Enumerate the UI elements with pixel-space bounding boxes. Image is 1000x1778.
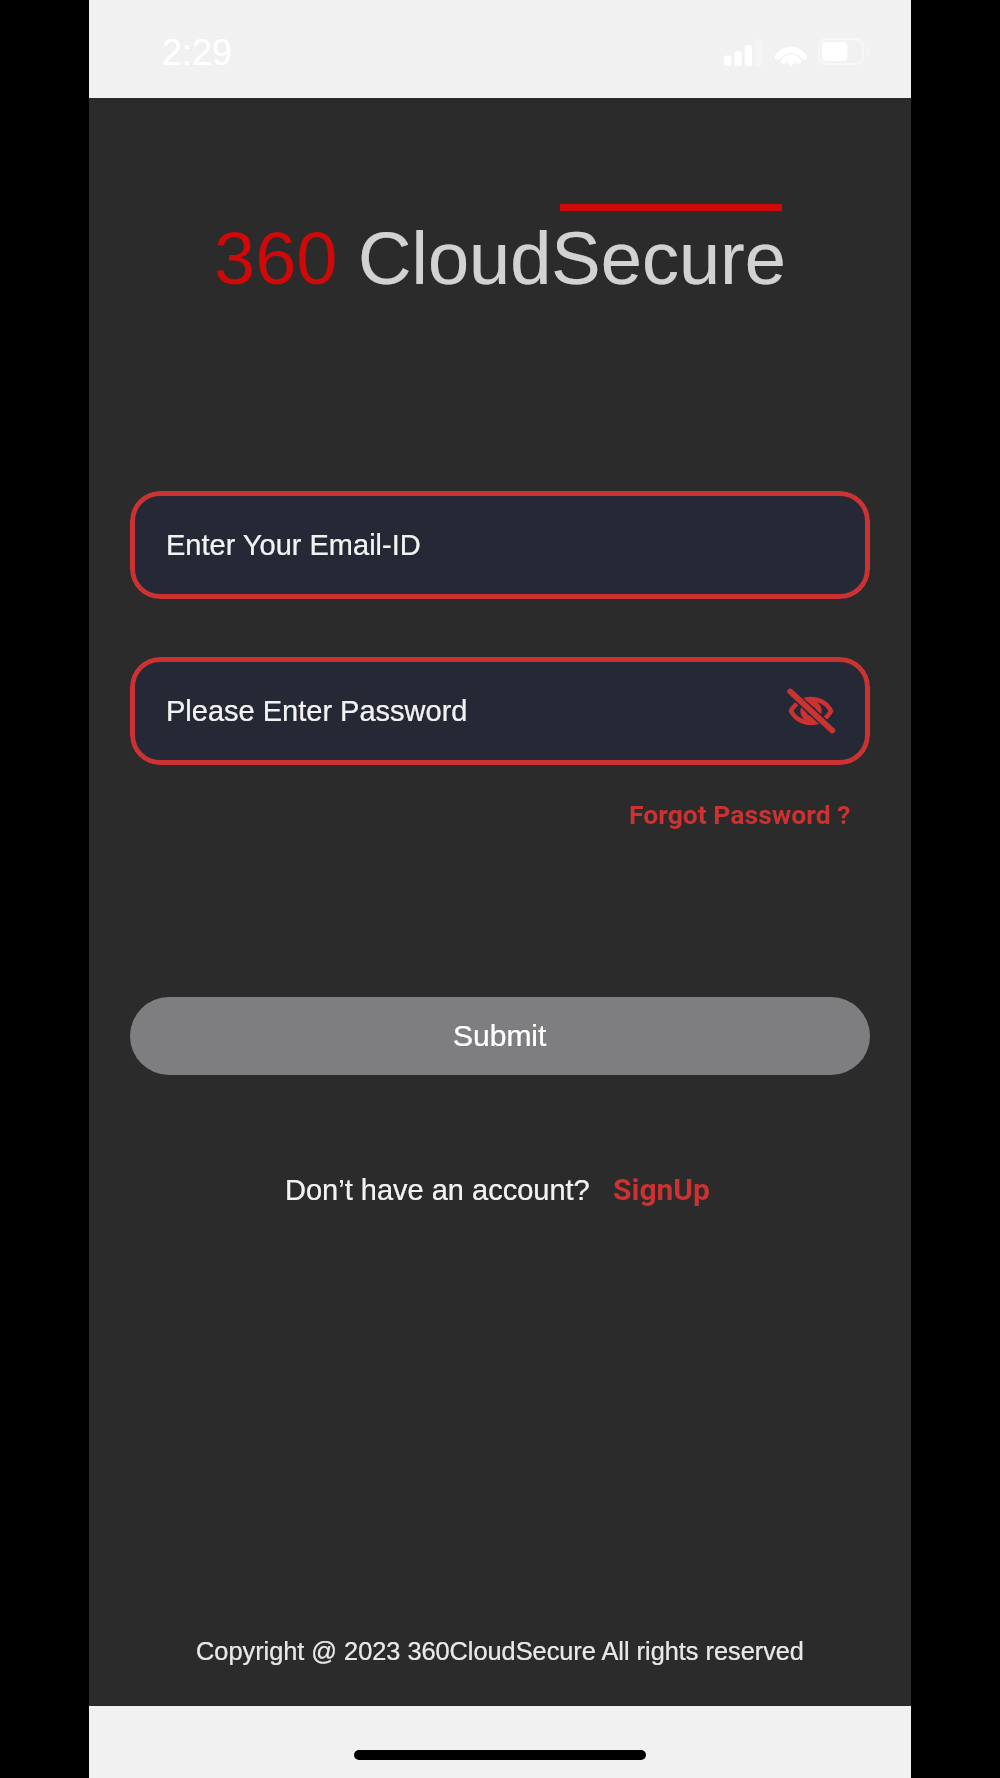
staticText: Copyright @ 2023 360CloudSecure All righ… — [196, 1637, 804, 1665]
button[interactable]: Password field — [130, 657, 870, 765]
button[interactable]: Forgot Password ? — [619, 794, 861, 835]
button[interactable]: Email address field — [130, 491, 870, 599]
staticText: Forgot Password ? — [629, 799, 851, 830]
staticText: 360 CloudSecure — [214, 217, 786, 300]
staticText: Please Enter Password — [166, 695, 468, 727]
staticText: 2:29 — [162, 32, 233, 72]
staticText: Enter Your Email-ID — [166, 529, 421, 561]
staticText: Don’t have an account? — [285, 1174, 590, 1206]
staticText: SignUp — [613, 1172, 710, 1207]
button[interactable]: Submit — [130, 997, 870, 1075]
button[interactable]: Show password — [780, 680, 842, 742]
staticText: Submit — [453, 1019, 547, 1053]
button[interactable]: SignUp — [604, 1166, 719, 1213]
